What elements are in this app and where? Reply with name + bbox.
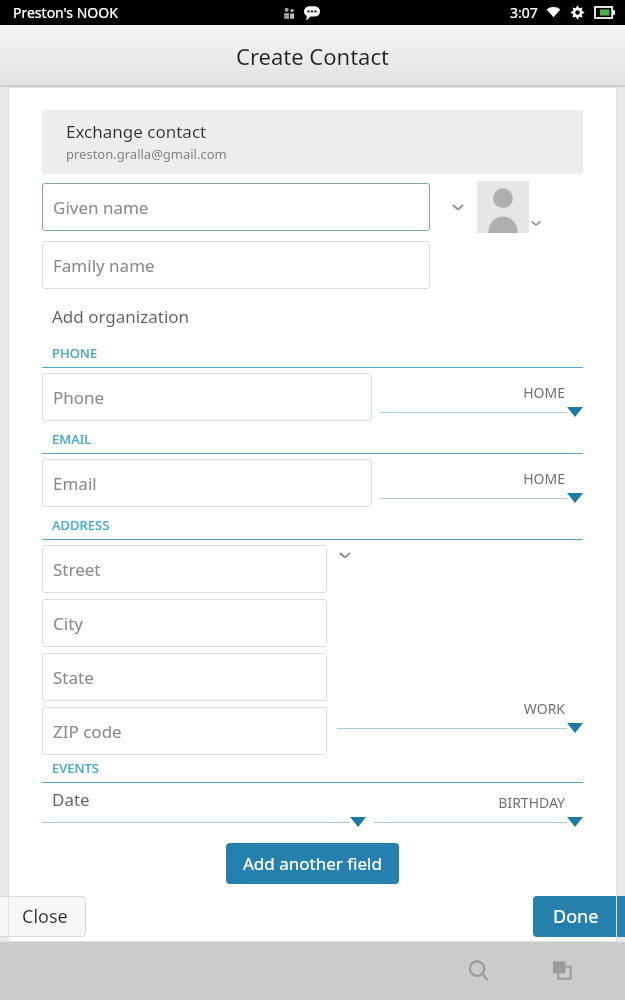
staticText: preston.gralla@gmail.com [66, 145, 227, 163]
staticText: Family name [53, 254, 155, 277]
staticText: EMAIL [52, 430, 92, 448]
button[interactable]: ZIP code [42, 707, 327, 755]
button[interactable]: Email [42, 459, 372, 507]
staticText: PHONE [52, 344, 98, 362]
staticText: State [53, 666, 94, 689]
staticText: Date [52, 788, 90, 811]
button[interactable]: State [42, 653, 327, 701]
staticText: BIRTHDAY [374, 793, 565, 812]
staticText: Email [53, 472, 97, 495]
button[interactable]: Add organization [42, 303, 190, 330]
button[interactable]: WORK [337, 699, 583, 733]
staticText: Street [53, 558, 101, 581]
staticText: EVENTS [52, 759, 100, 777]
staticText: Done [553, 904, 599, 929]
button[interactable]: Search [457, 949, 501, 993]
staticText: Exchange contact [66, 120, 207, 143]
staticText: WORK [337, 699, 565, 718]
staticText: Phone [53, 386, 105, 409]
staticText: City [53, 612, 83, 635]
button[interactable]: HOME [380, 383, 583, 417]
staticText: 3:07 [510, 3, 538, 22]
button[interactable]: BIRTHDAY [374, 793, 583, 827]
button[interactable]: Recent apps [541, 949, 585, 993]
button[interactable]: HOME [380, 469, 583, 503]
button[interactable]: Close [0, 896, 86, 937]
button[interactable]: City [42, 599, 327, 647]
button[interactable]: Expand name fields [445, 194, 471, 220]
button[interactable]: Add another field [226, 843, 399, 884]
button[interactable]: Expand address fields [337, 547, 363, 571]
staticText: Preston's NOOK [13, 3, 118, 22]
button[interactable]: Phone [42, 373, 372, 421]
button[interactable]: Done [533, 896, 625, 937]
staticText: Close [22, 904, 68, 929]
staticText: Given name [53, 196, 149, 219]
button[interactable]: Given name [42, 183, 430, 231]
button[interactable]: Street [42, 545, 327, 593]
staticText: ZIP code [53, 720, 122, 743]
staticText: HOME [380, 383, 565, 402]
button[interactable]: Family name [42, 241, 430, 289]
staticText: Add another field [243, 852, 382, 875]
staticText: Create Contact [236, 41, 389, 71]
button[interactable]: Date [42, 788, 366, 827]
staticText: HOME [380, 469, 565, 488]
button[interactable]: Contact photo [477, 181, 529, 233]
staticText: ADDRESS [52, 516, 110, 534]
